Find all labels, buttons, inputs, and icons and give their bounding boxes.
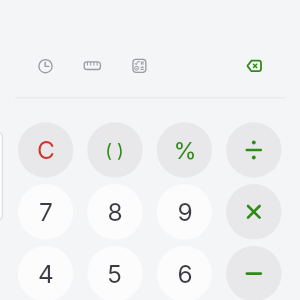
button[interactable]: Minus	[226, 246, 281, 300]
button[interactable]: Divide	[226, 122, 281, 177]
button[interactable]: Clear	[18, 122, 73, 177]
staticText: 6	[177, 259, 193, 289]
staticText: C	[37, 135, 55, 165]
button[interactable]: Parentheses	[87, 122, 142, 177]
button[interactable]: Scientific calculator	[122, 49, 156, 83]
staticText: %	[173, 136, 197, 164]
button[interactable]: 5	[87, 246, 142, 300]
button[interactable]: Unit converter	[75, 49, 109, 83]
button[interactable]: Percent	[157, 122, 212, 177]
button[interactable]: 9	[157, 184, 212, 239]
button[interactable]: 4	[18, 246, 73, 300]
staticText: 4	[38, 259, 54, 289]
button[interactable]: 6	[157, 246, 212, 300]
button[interactable]: Multiply	[226, 184, 281, 239]
button[interactable]: Calculation history	[29, 49, 63, 83]
staticText: 7	[39, 197, 53, 227]
staticText: 9	[177, 197, 193, 227]
staticText: 8	[107, 197, 123, 227]
button[interactable]: 7	[18, 184, 73, 239]
staticText: 5	[107, 259, 122, 289]
button[interactable]: 8	[87, 184, 142, 239]
button[interactable]: Backspace	[237, 49, 271, 83]
staticText: ( )	[105, 139, 124, 161]
